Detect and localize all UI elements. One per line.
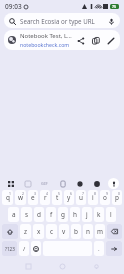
button[interactable]: 0 (112, 190, 122, 205)
staticText: u (79, 193, 83, 202)
staticText: GIF (41, 181, 48, 186)
button[interactable]: a (8, 207, 19, 222)
staticText: z (24, 227, 28, 236)
button[interactable]: c (46, 224, 57, 239)
button[interactable]: GIF (39, 178, 50, 189)
button[interactable]: k (94, 207, 104, 222)
button[interactable]: x (33, 224, 44, 239)
button[interactable]: g (58, 207, 68, 222)
button[interactable]: v (59, 224, 69, 239)
staticText: e (31, 193, 35, 202)
button[interactable]: 7 (76, 190, 86, 205)
button[interactable]: Settings (74, 178, 85, 189)
button[interactable]: Home (56, 260, 68, 272)
staticText: b (74, 227, 78, 236)
staticText: f (50, 210, 53, 219)
button[interactable]: 2 (15, 190, 26, 205)
staticText: 0 (118, 191, 120, 196)
button[interactable]: 6 (64, 190, 74, 205)
button[interactable]: Notebook Test, La… (4, 30, 120, 50)
button[interactable]: z (20, 224, 31, 239)
staticText: d (37, 210, 41, 219)
staticText: 5 (58, 191, 60, 196)
staticText: j (86, 210, 88, 219)
staticText: q (6, 193, 10, 202)
button[interactable]: Theme (91, 178, 102, 189)
staticText: l (110, 210, 112, 219)
staticText: 2 (22, 191, 24, 196)
staticText: g (61, 210, 65, 219)
staticText: Notebook Test, La… (20, 32, 73, 40)
staticText: 4 (46, 191, 48, 196)
staticText: s (25, 210, 29, 219)
button[interactable]: s (21, 207, 32, 222)
staticText: Search Ecosia or type URL (20, 17, 95, 25)
button[interactable]: Stickers (22, 178, 33, 189)
staticText: c (50, 227, 54, 236)
other: Search (9, 18, 16, 25)
button[interactable]: Edit (105, 35, 116, 46)
staticText: v (62, 227, 66, 236)
button[interactable]: d (34, 207, 44, 222)
button[interactable]: Shift (2, 224, 18, 239)
staticText: 8 (94, 191, 96, 196)
staticText: t (56, 193, 59, 202)
button[interactable]: m (95, 224, 105, 239)
staticText: h (73, 210, 77, 219)
button[interactable]: 8 (88, 190, 98, 205)
staticText: i (92, 193, 94, 202)
staticText: 9 (106, 191, 108, 196)
staticText: n (86, 227, 90, 236)
button[interactable]: 5 (52, 190, 62, 205)
button[interactable]: 1 (2, 190, 13, 205)
button[interactable]: Clipboard (57, 178, 68, 189)
staticText: x (37, 227, 41, 236)
button[interactable]: / (19, 241, 29, 256)
button[interactable]: f (46, 207, 56, 222)
button[interactable]: l (106, 207, 116, 222)
button[interactable]: Copy (90, 35, 101, 46)
button[interactable]: ?123 (2, 241, 17, 256)
staticText: a (12, 210, 16, 219)
staticText: p (115, 193, 119, 202)
staticText: 3 (34, 191, 36, 196)
staticText: notebookcheck.com (20, 41, 70, 48)
staticText: r (44, 193, 47, 202)
button[interactable]: b (71, 224, 81, 239)
staticText: / (23, 245, 26, 253)
staticText: y (67, 193, 71, 202)
button[interactable]: Back (90, 260, 102, 272)
staticText: 75 (112, 4, 117, 9)
staticText: m (97, 227, 103, 236)
button[interactable]: n (83, 224, 93, 239)
button[interactable]: 3 (28, 190, 38, 205)
button[interactable]: Backspace (107, 224, 122, 239)
button[interactable]: h (70, 207, 80, 222)
button[interactable]: Go (106, 241, 122, 256)
other: Voice search (108, 18, 115, 25)
button[interactable]: Search (4, 13, 120, 28)
staticText: 7 (82, 191, 84, 196)
button[interactable]: Recents (22, 260, 34, 272)
button[interactable]: Emoji (31, 241, 41, 256)
button[interactable]: Voice input (108, 178, 119, 189)
button[interactable]: j (82, 207, 92, 222)
staticText: . (98, 245, 100, 253)
button[interactable]: 4 (40, 190, 50, 205)
staticText: 6 (70, 191, 72, 196)
button[interactable]: Share (75, 35, 86, 46)
button[interactable]: 9 (100, 190, 110, 205)
staticText: ?123 (5, 246, 15, 252)
staticText: 1 (9, 191, 11, 196)
staticText: w (18, 193, 24, 202)
button[interactable]: Apps (5, 178, 16, 189)
staticText: k (97, 210, 101, 219)
staticText: 09:03 (5, 2, 22, 11)
button[interactable]: . (94, 241, 104, 256)
staticText: o (103, 193, 107, 202)
